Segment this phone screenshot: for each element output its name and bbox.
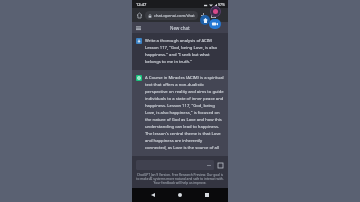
button[interactable]	[136, 160, 214, 170]
button[interactable]: Recent apps	[201, 189, 213, 201]
staticText: Write a thorough analysis of ACIM Lesson…	[145, 38, 224, 65]
button[interactable]: Back	[147, 189, 159, 201]
button[interactable]: New tab	[198, 10, 208, 20]
button[interactable]: Home	[174, 189, 186, 201]
button[interactable]: Recording indicator	[210, 6, 221, 17]
button[interactable]: Tabs	[208, 10, 218, 20]
staticText: New chat	[170, 25, 190, 31]
button[interactable]: Stop generating	[217, 162, 224, 169]
staticText: A Course in Miracles (ACIM) is a spiritu…	[145, 75, 224, 151]
button[interactable]: chat.openai.com/chat	[145, 11, 198, 20]
button[interactable]: Menu	[134, 24, 142, 32]
staticText: 12:47	[136, 2, 147, 7]
button[interactable]: Home	[135, 11, 144, 20]
staticText: 97%	[218, 2, 225, 7]
staticText: chat.openai.com/chat	[154, 13, 195, 18]
button[interactable]: Overlay home	[200, 15, 210, 25]
button[interactable]: Screen record	[209, 19, 221, 29]
staticText: ChatGPT Jan 9 Version. Free Research Pre…	[136, 173, 224, 185]
